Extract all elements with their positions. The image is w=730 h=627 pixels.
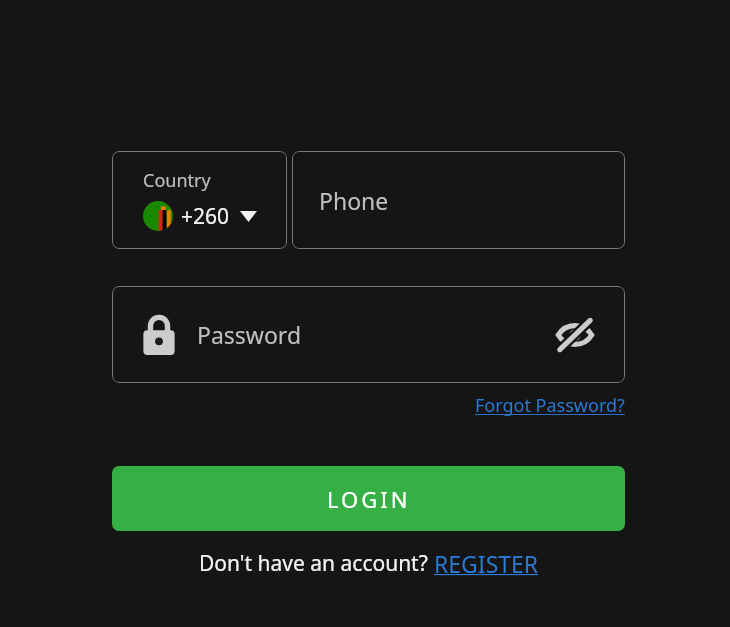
button[interactable]: Password	[112, 286, 625, 383]
button[interactable]: Country	[112, 151, 287, 249]
button[interactable]: Forgot Password?	[475, 391, 625, 420]
staticText: Password	[197, 319, 302, 350]
button[interactable]: Show password	[553, 313, 597, 357]
button[interactable]: Phone	[292, 151, 625, 249]
staticText: Don't have an account?	[199, 549, 434, 578]
staticText: Phone	[319, 185, 389, 216]
staticText: Country	[143, 168, 211, 193]
button[interactable]: REGISTER	[434, 548, 539, 579]
staticText: LOGIN	[327, 484, 411, 514]
staticText: +260	[181, 202, 230, 231]
button[interactable]: LOGIN	[112, 466, 625, 531]
